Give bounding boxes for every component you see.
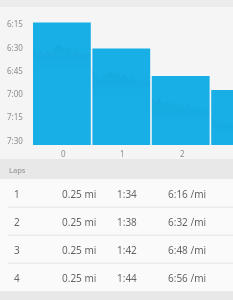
staticText: 0: [61, 148, 66, 159]
staticText: 0.25 mi: [62, 187, 97, 201]
staticText: 2: [14, 215, 20, 229]
staticText: 7:00: [7, 88, 23, 99]
button[interactable]: 1: [0, 179, 233, 207]
staticText: 1:38: [117, 215, 137, 229]
staticText: 6:16 /mi: [168, 187, 207, 201]
staticText: 1:34: [117, 187, 137, 201]
staticText: 1:42: [117, 243, 137, 257]
staticText: 4: [14, 271, 20, 285]
staticText: 6:30: [7, 42, 23, 53]
staticText: 6:56 /mi: [168, 271, 207, 285]
staticText: 1: [14, 187, 20, 201]
staticText: 6:45: [7, 65, 23, 76]
staticText: 0.25 mi: [62, 215, 97, 229]
staticText: 7:15: [7, 111, 23, 122]
button[interactable]: 4: [0, 263, 233, 291]
staticText: 6:48 /mi: [168, 243, 207, 257]
button[interactable]: 3: [0, 235, 233, 263]
staticText: 7:30: [7, 135, 23, 146]
staticText: 0.25 mi: [62, 271, 97, 285]
staticText: 1:44: [117, 271, 137, 285]
staticText: 0.25 mi: [62, 243, 97, 257]
staticText: 6:15: [7, 18, 23, 29]
staticText: Laps: [9, 165, 26, 175]
staticText: 1: [120, 148, 125, 159]
staticText: 6:32 /mi: [168, 215, 207, 229]
staticText: 3: [14, 243, 20, 257]
staticText: 2: [180, 148, 185, 159]
button[interactable]: 2: [0, 207, 233, 235]
